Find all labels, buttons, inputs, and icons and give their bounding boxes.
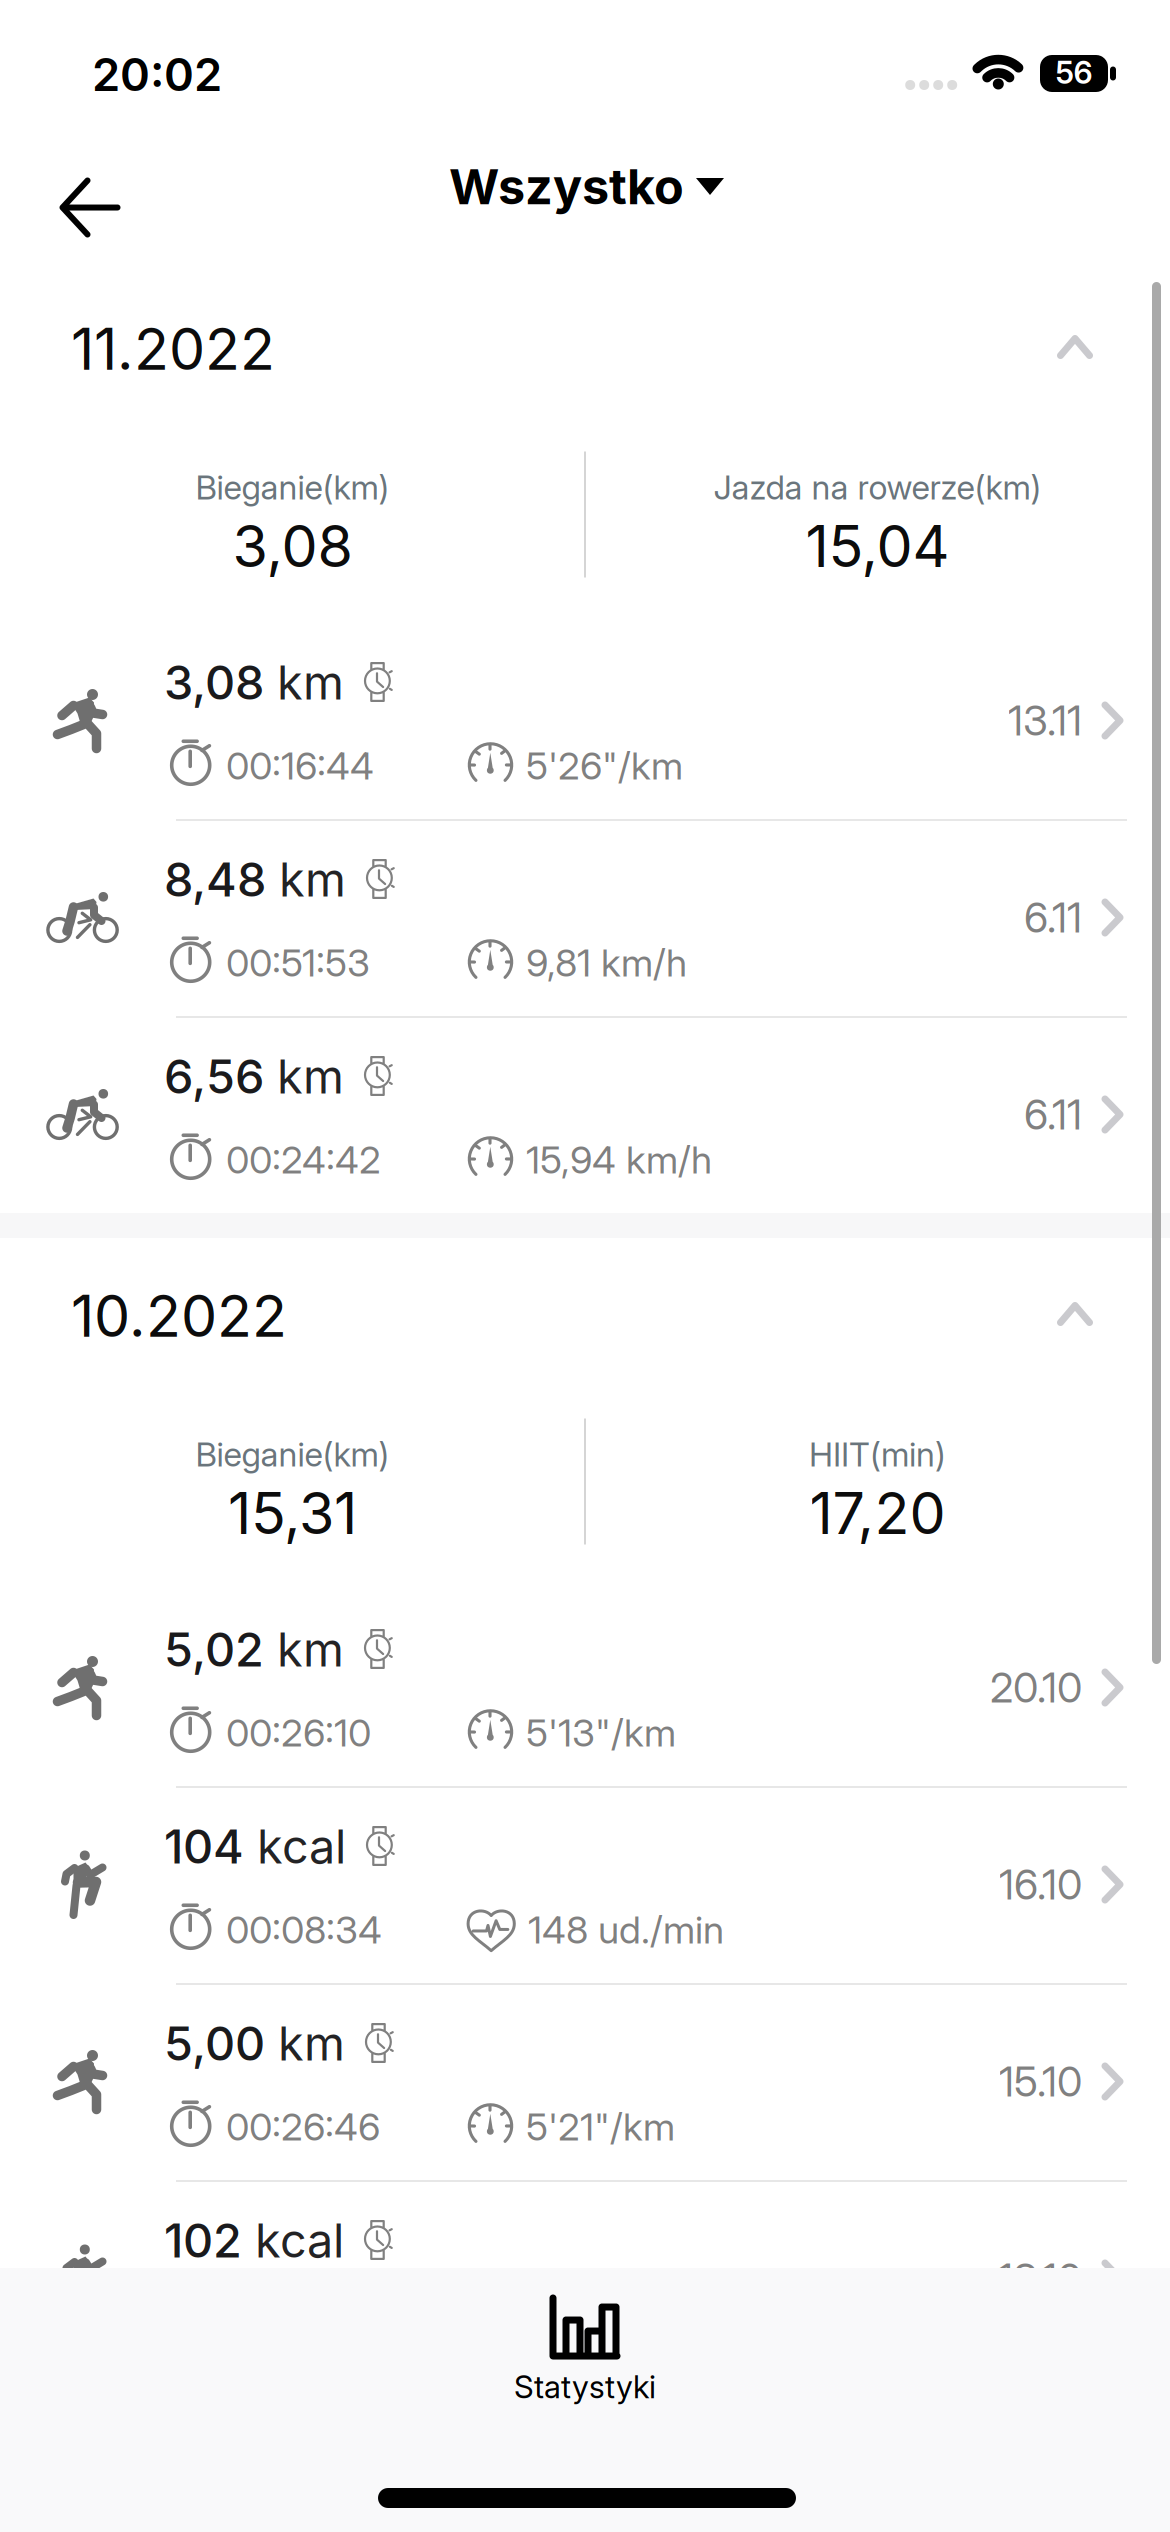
button[interactable]: Collapse 11.2022: [1029, 271, 1121, 423]
button[interactable]: 102: [0, 2180, 1170, 2377]
staticText: 5'21"/km: [526, 2104, 675, 2150]
staticText: 00:16:44: [226, 743, 374, 789]
staticText: 5,02: [164, 1621, 264, 1678]
staticText: Bieganie(km): [195, 467, 389, 507]
staticText: km: [264, 1621, 344, 1678]
staticText: 00:24:42: [226, 1137, 381, 1183]
staticText: kcal: [244, 1818, 346, 1875]
button[interactable]: 5,02: [0, 1589, 1170, 1786]
staticText: 20:02: [92, 47, 222, 102]
staticText: 3,08: [232, 511, 352, 581]
staticText: 15,04: [805, 511, 949, 581]
staticText: km: [264, 654, 344, 711]
staticText: 8,48: [164, 851, 266, 908]
button[interactable]: 8,48: [0, 819, 1170, 1016]
staticText: 00:26:46: [226, 2104, 380, 2150]
staticText: 5'13"/km: [526, 1710, 676, 1756]
staticText: 6.11: [1024, 892, 1082, 942]
staticText: 6.11: [1024, 1089, 1082, 1139]
staticText: Statystyki: [514, 2368, 656, 2406]
staticText: 151 ud./min: [528, 2301, 713, 2347]
staticText: 9,81 km/h: [526, 940, 687, 986]
staticText: 3,08: [164, 654, 264, 711]
staticText: 102: [164, 2212, 242, 2269]
staticText: Bieganie(km): [195, 1434, 389, 1474]
staticText: 00:26:10: [226, 1710, 371, 1756]
staticText: km: [265, 2015, 345, 2072]
staticText: Jazda na rowerze(km): [713, 467, 1041, 507]
staticText: 15,94 km/h: [526, 1137, 712, 1183]
staticText: 11.2022: [71, 314, 275, 384]
staticText: 15.10: [999, 2056, 1082, 2106]
staticText: km: [264, 1048, 344, 1105]
staticText: 13.10: [998, 2253, 1082, 2303]
button[interactable]: Collapse 10.2022: [1029, 1238, 1121, 1390]
staticText: 56: [1055, 54, 1092, 91]
staticText: 00:08:34: [226, 1907, 382, 1953]
staticText: kcal: [242, 2212, 344, 2269]
staticText: 5'26"/km: [526, 743, 683, 789]
button[interactable]: 6,56: [0, 1016, 1170, 1213]
staticText: 104: [164, 1818, 244, 1875]
staticText: 20.10: [990, 1662, 1082, 1712]
staticText: 148 ud./min: [528, 1907, 724, 1953]
staticText: 5,00: [164, 2015, 265, 2072]
staticText: Wszystko: [449, 157, 684, 216]
button[interactable]: Statystyki: [435, 2295, 735, 2406]
staticText: HIIT(min): [809, 1434, 946, 1474]
staticText: 00:51:53: [226, 940, 370, 986]
staticText: 10.2022: [71, 1281, 287, 1351]
staticText: 13.11: [1008, 695, 1082, 745]
button[interactable]: 104: [0, 1786, 1170, 1983]
staticText: 17,20: [809, 1478, 945, 1548]
staticText: 6,56: [164, 1048, 264, 1105]
button[interactable]: Wszystko: [431, 130, 739, 271]
staticText: 16.10: [999, 1859, 1082, 1909]
staticText: km: [266, 851, 346, 908]
button[interactable]: 3,08: [0, 622, 1170, 819]
staticText: 15,31: [228, 1478, 357, 1548]
button[interactable]: Back: [30, 130, 150, 271]
button[interactable]: 5,00: [0, 1983, 1170, 2180]
